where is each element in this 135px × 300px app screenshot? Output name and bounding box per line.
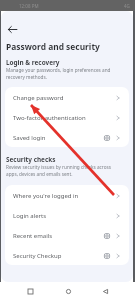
button[interactable]: Login alerts	[5, 205, 129, 225]
staticText: Where you're logged in	[13, 192, 114, 200]
button[interactable]: Back	[6, 23, 19, 36]
staticText: Change password	[13, 94, 114, 102]
staticText: Security checks	[6, 155, 56, 164]
button[interactable]: Saved login	[5, 127, 129, 147]
staticText: Saved login	[13, 134, 103, 142]
staticText: Review security issues by running checks…	[6, 164, 116, 178]
staticText: Login & recovery	[6, 58, 60, 67]
button[interactable]: Two-factor authentication	[5, 107, 129, 127]
button[interactable]: Recent emails	[5, 225, 129, 245]
button[interactable]: Recent apps	[23, 284, 37, 298]
button[interactable]: Back	[98, 284, 112, 298]
button[interactable]: Security Checkup	[5, 245, 129, 265]
staticText: 12:08 PM	[19, 3, 39, 9]
staticText: Security Checkup	[13, 252, 103, 260]
staticText: Two-factor authentication	[13, 114, 114, 122]
staticText: Login alerts	[13, 212, 114, 220]
button[interactable]: Change password	[5, 87, 129, 107]
staticText: 4G	[124, 3, 130, 9]
staticText: Manage your passwords, login preferences…	[6, 67, 116, 81]
staticText: Recent emails	[13, 232, 103, 240]
staticText: Password and security	[6, 41, 100, 52]
button[interactable]: Home	[61, 284, 75, 298]
button[interactable]: Where you're logged in	[5, 185, 129, 205]
